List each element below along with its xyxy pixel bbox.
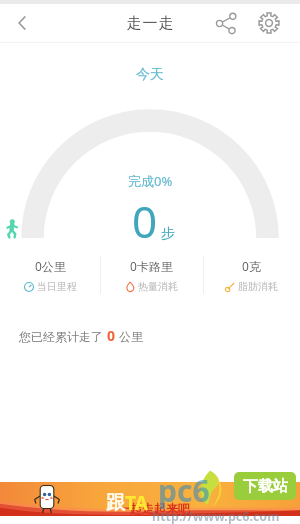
staticText: 0	[132, 191, 158, 251]
staticText: 一起走起来吧	[118, 501, 190, 516]
staticText: 公里	[116, 328, 144, 344]
button[interactable]: Share	[209, 6, 243, 40]
staticText: 今天	[0, 66, 300, 84]
staticText: 0卡路里	[130, 258, 173, 274]
staticText: 当日里程	[37, 280, 77, 293]
staticText: 您已经累计走了	[19, 328, 107, 344]
staticText: TA	[125, 490, 148, 516]
staticText: 0克	[242, 258, 261, 274]
staticText: 完成0%	[128, 172, 173, 190]
staticText: 0	[107, 326, 116, 345]
button[interactable]: Advertisement banner	[0, 482, 300, 516]
button[interactable]: 0卡路里	[100, 252, 203, 298]
staticText: pc6	[158, 470, 210, 511]
staticText: 0公里	[35, 258, 66, 274]
staticText: http://www.pc6.com	[152, 508, 280, 524]
button[interactable]: 0公里	[0, 252, 100, 298]
button[interactable]: Settings	[252, 6, 286, 40]
staticText: 走一走	[126, 14, 174, 33]
staticText: 下载站	[243, 477, 288, 496]
button[interactable]: Back	[6, 7, 38, 39]
staticText: 跟	[106, 491, 125, 515]
button[interactable]: 0克	[203, 252, 300, 298]
staticText: 步	[161, 225, 175, 243]
staticText: 热量消耗	[138, 280, 178, 293]
staticText: 脂肪消耗	[238, 280, 278, 293]
